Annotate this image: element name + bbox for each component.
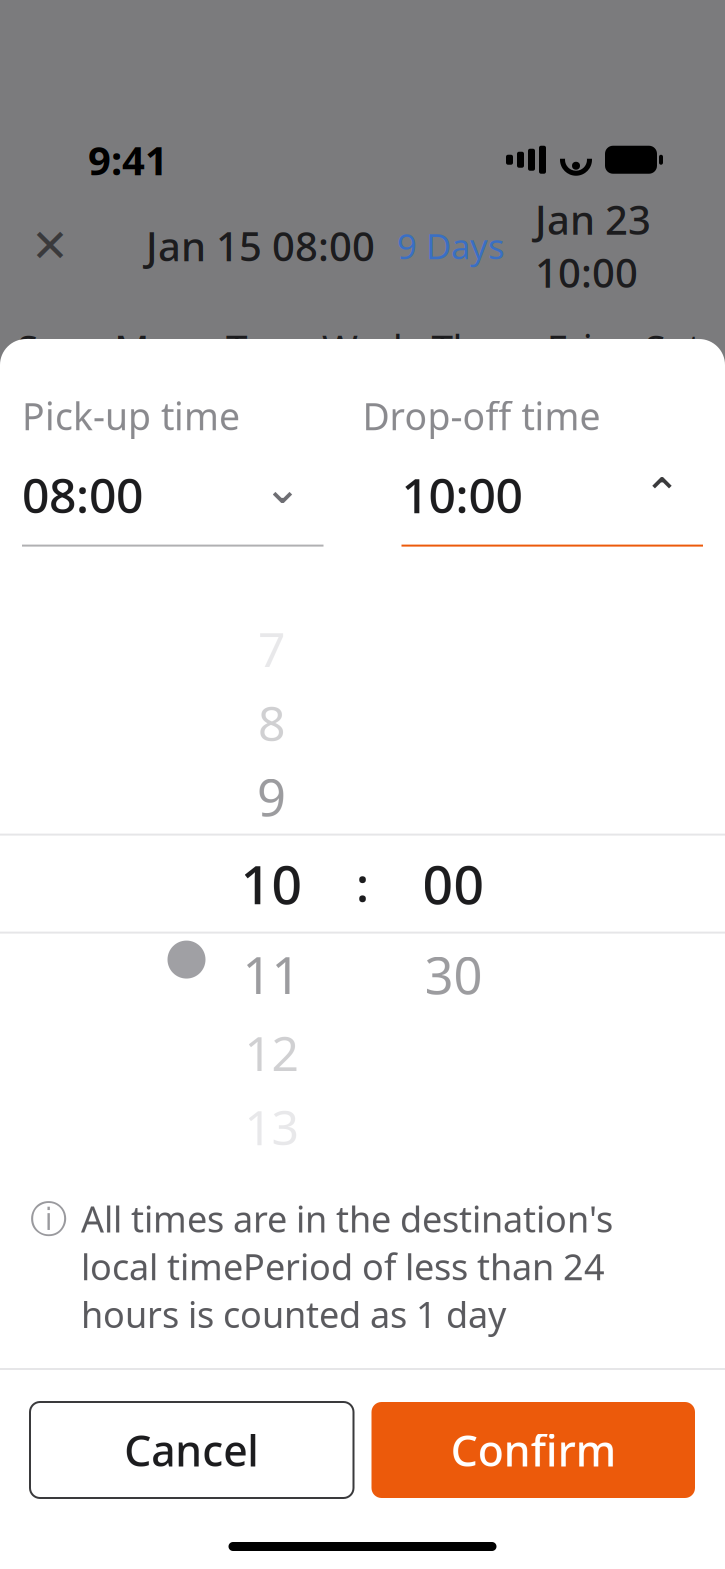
- staticText: 9:41: [88, 133, 168, 186]
- staticText: Drop-off time: [362, 391, 600, 441]
- staticText: 08:00: [22, 463, 143, 526]
- button[interactable]: 08:00: [22, 441, 323, 547]
- staticText: 10: [240, 848, 302, 919]
- staticText: Sun: [17, 322, 86, 373]
- staticText: Jan 15 08:00: [146, 219, 375, 272]
- staticText: Jan 23 10:00: [535, 193, 651, 299]
- staticText: ⌃: [643, 469, 681, 520]
- staticText: All times are in the destination's local…: [81, 1195, 613, 1338]
- staticText: Confirm: [451, 1422, 616, 1478]
- staticText: Cancel: [124, 1422, 259, 1478]
- button[interactable]: 10:00: [401, 441, 703, 547]
- staticText: 00: [422, 848, 484, 919]
- staticText: January 2024: [32, 443, 321, 503]
- staticText: Mon: [114, 322, 196, 373]
- staticText: Sat: [645, 322, 702, 373]
- staticText: 10:00: [401, 463, 522, 526]
- staticText: Wed: [322, 322, 403, 373]
- staticText: ✕: [31, 220, 69, 271]
- staticText: Thu: [432, 322, 501, 373]
- button[interactable]: Cancel: [30, 1402, 353, 1498]
- staticText: 13: [244, 1095, 298, 1158]
- staticText: 7: [258, 617, 285, 680]
- staticText: 9: [257, 763, 286, 830]
- staticText: 9 Days: [397, 223, 505, 269]
- staticText: 11: [242, 941, 300, 1008]
- staticText: :: [356, 852, 369, 915]
- staticText: 30: [424, 941, 482, 1008]
- staticText: 9: [247, 654, 271, 710]
- staticText: Tue: [226, 322, 292, 373]
- button[interactable]: Confirm: [371, 1402, 695, 1498]
- staticText: Fri: [547, 322, 593, 373]
- staticText: 12: [244, 1021, 298, 1084]
- staticText: 8: [258, 691, 285, 754]
- staticText: Pick-up time: [22, 391, 240, 441]
- staticText: ⓘ: [30, 1197, 67, 1242]
- staticText: ⌄: [263, 462, 301, 513]
- button[interactable]: Close: [18, 214, 82, 278]
